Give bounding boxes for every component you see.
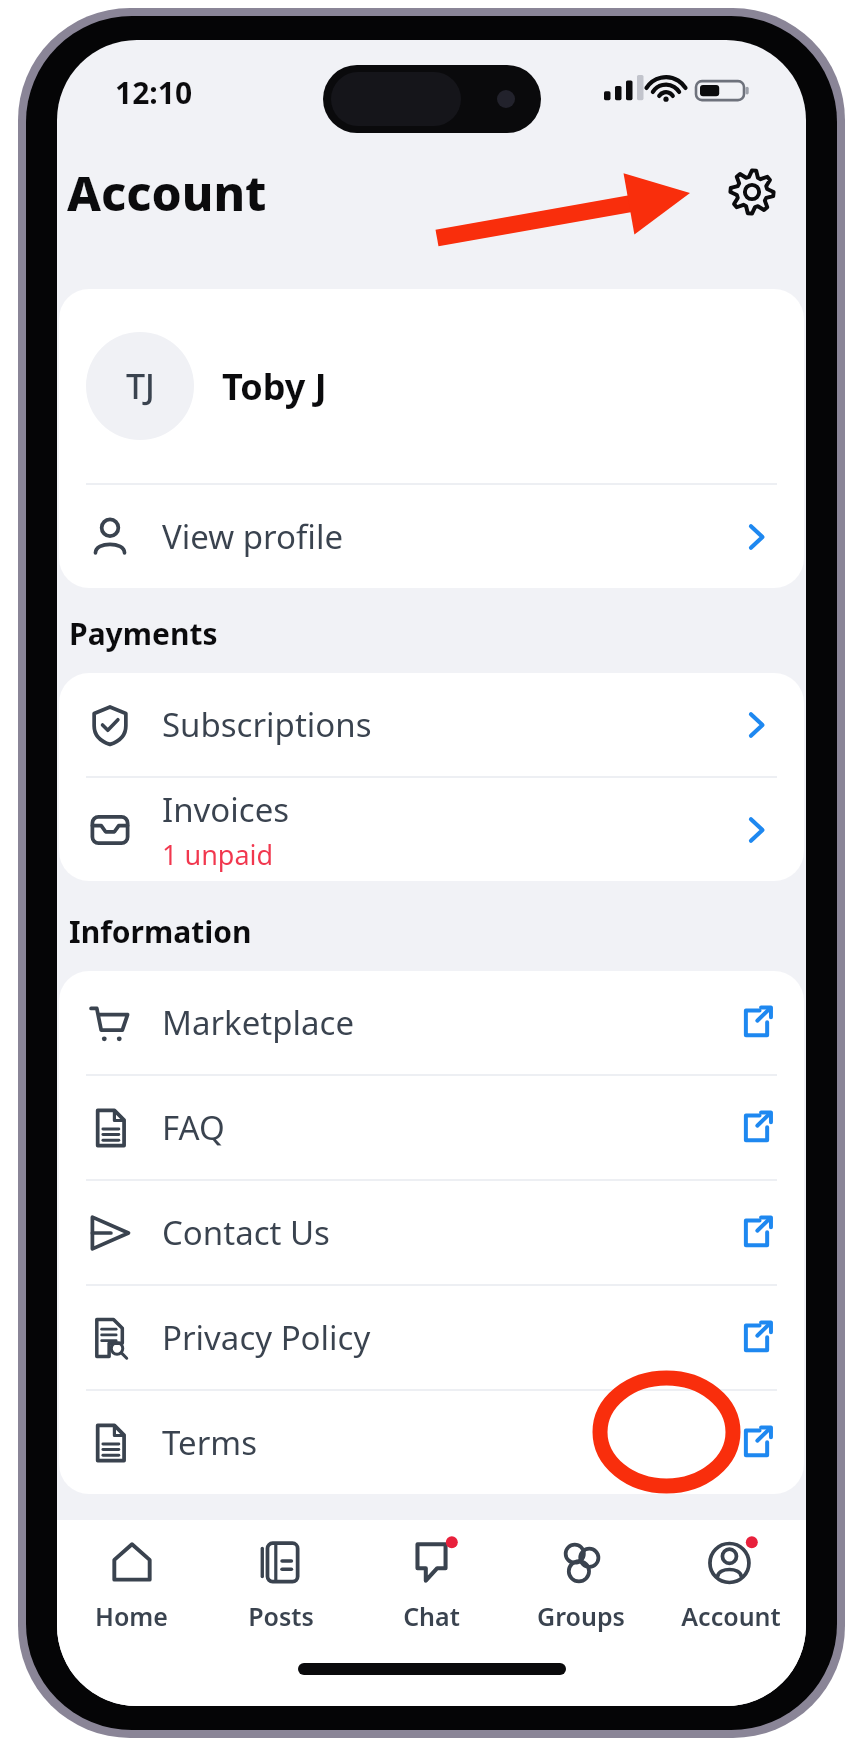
staticText: Contact Us: [162, 1210, 330, 1255]
staticText: Privacy Policy: [162, 1315, 371, 1360]
staticText: Marketplace: [162, 1000, 354, 1045]
staticText: Terms: [162, 1420, 257, 1465]
button[interactable]: Invoices: [59, 778, 804, 881]
button[interactable]: Account: [656, 1520, 806, 1648]
staticText: Invoices: [162, 787, 290, 832]
button[interactable]: FAQ: [59, 1076, 804, 1179]
staticText: Home: [95, 1599, 168, 1633]
staticText: Groups: [537, 1599, 625, 1633]
staticText: Posts: [248, 1599, 314, 1633]
staticText: Information: [69, 911, 252, 952]
button[interactable]: Chat: [356, 1520, 506, 1648]
button[interactable]: TJ: [59, 289, 804, 483]
button[interactable]: Contact Us: [59, 1181, 804, 1284]
button[interactable]: Settings: [714, 154, 790, 230]
button[interactable]: Home: [57, 1520, 206, 1648]
button[interactable]: Marketplace: [59, 971, 804, 1074]
button[interactable]: Subscriptions: [59, 673, 804, 776]
staticText: TJ: [126, 363, 155, 409]
staticText: Account: [67, 160, 267, 225]
staticText: Toby J: [222, 362, 327, 411]
button[interactable]: Privacy Policy: [59, 1286, 804, 1389]
staticText: Subscriptions: [162, 702, 372, 747]
button[interactable]: View profile: [59, 485, 804, 588]
staticText: Chat: [403, 1599, 460, 1633]
staticText: Payments: [69, 613, 218, 654]
staticText: 12:10: [115, 72, 193, 113]
button[interactable]: Terms: [59, 1391, 804, 1494]
staticText: FAQ: [162, 1105, 225, 1150]
button[interactable]: Groups: [506, 1520, 656, 1648]
staticText: Account: [681, 1599, 781, 1633]
button[interactable]: Posts: [206, 1520, 356, 1648]
staticText: 1 unpaid: [162, 836, 274, 873]
staticText: View profile: [162, 514, 344, 559]
